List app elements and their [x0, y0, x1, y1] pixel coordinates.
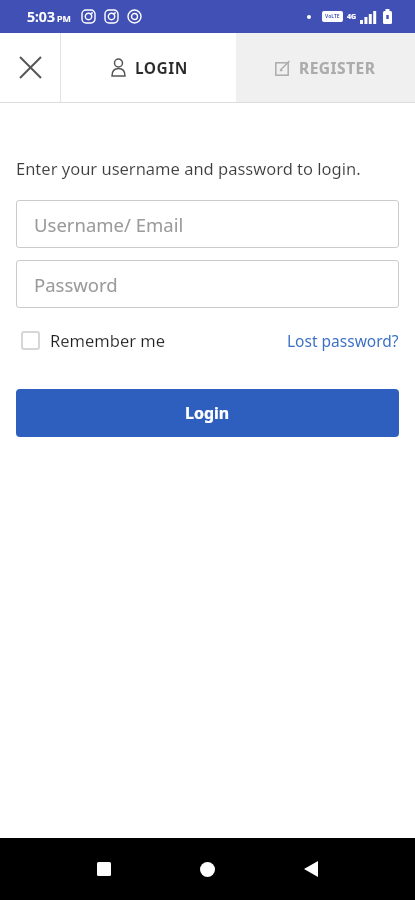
button[interactable]: Lost password? [287, 330, 399, 351]
button[interactable]: Login [16, 389, 399, 437]
staticText: REGISTER [299, 57, 376, 78]
staticText: 4G [347, 12, 357, 22]
staticText: Password [34, 272, 118, 297]
button[interactable]: Username/ Email [16, 200, 399, 248]
staticText: VoLTE [325, 13, 340, 20]
staticText: LOGIN [135, 57, 188, 78]
button[interactable]: Password [16, 260, 399, 308]
staticText: Lost password? [287, 330, 399, 351]
staticText: Enter your username and password to logi… [16, 157, 361, 179]
staticText: PM [57, 12, 71, 24]
staticText: Remember me [50, 329, 166, 351]
button[interactable] [21, 331, 40, 350]
staticText: Login [185, 402, 230, 424]
button[interactable] [0, 33, 60, 102]
button[interactable] [183, 845, 231, 893]
button[interactable] [80, 845, 128, 893]
button[interactable]: REGISTER [236, 33, 415, 102]
button[interactable]: LOGIN [61, 33, 236, 102]
staticText: Username/ Email [34, 212, 184, 237]
button[interactable] [287, 845, 335, 893]
staticText: 5:03 [27, 7, 55, 26]
